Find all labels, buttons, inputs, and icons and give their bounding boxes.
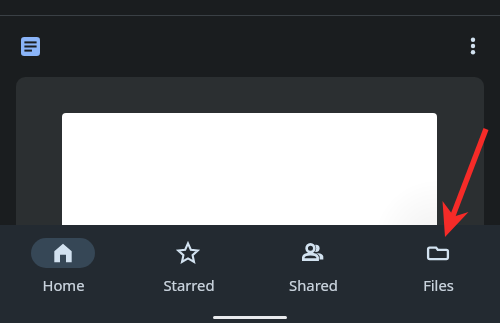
staticText: Files bbox=[423, 275, 454, 293]
staticText: Starred bbox=[163, 275, 215, 293]
staticText: Home bbox=[42, 275, 85, 293]
button[interactable]: Shared bbox=[250, 225, 375, 293]
button[interactable]: Document bbox=[10, 26, 50, 66]
button[interactable]: Home bbox=[0, 225, 125, 293]
button[interactable]: Files bbox=[375, 225, 500, 293]
button[interactable]: Starred bbox=[125, 225, 250, 293]
staticText: Shared bbox=[289, 275, 338, 293]
button[interactable]: More options bbox=[453, 26, 493, 66]
